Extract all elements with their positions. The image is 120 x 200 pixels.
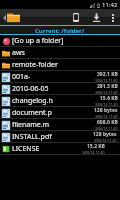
staticText: 11:42 (102, 1, 118, 9)
staticText: 3/06/14 11:40 (82, 150, 105, 155)
button[interactable]: INSTALL.pdf (0, 131, 120, 143)
staticText: document.pdf (12, 108, 53, 118)
staticText: aws (12, 48, 25, 58)
button[interactable]: Current: /folder/ (0, 26, 120, 35)
staticText: 392.1 KB (97, 71, 118, 78)
button[interactable]: More options (106, 9, 120, 26)
staticText: 3/06/14 11:40 (95, 114, 118, 119)
button[interactable]: Download (86, 9, 106, 26)
staticText: INSTALL.pdf (12, 132, 52, 142)
button[interactable]: filename.mp3 (0, 119, 120, 131)
staticText: 3/06/14 11:40 (95, 90, 118, 95)
staticText: 3/06/14 11:40 (95, 102, 118, 107)
staticText: 128 bytes (93, 131, 117, 138)
button[interactable]: changelog.html (0, 95, 120, 107)
staticText: filename.mp3 (12, 120, 53, 130)
staticText: 3/06/14 11:40 (95, 126, 118, 131)
staticText: 608.0 KB (97, 119, 118, 126)
button[interactable]: App icon, up (0, 9, 22, 26)
button[interactable]: document.pdf (0, 107, 120, 119)
staticText: 001a-test.jpg (12, 72, 53, 82)
staticText: LICENSE (12, 144, 40, 154)
button[interactable]: [Go up a folder] (0, 35, 120, 47)
staticText: 128 bytes (94, 107, 118, 114)
staticText: [Go up a folder] (12, 36, 64, 46)
button[interactable]: Local device (66, 9, 86, 26)
button[interactable]: remote-folder (0, 59, 120, 71)
button[interactable]: 2010-06-05 14.03.25.jpg (0, 83, 120, 95)
staticText: 3/06/14 11:40 (94, 138, 117, 143)
button[interactable]: aws (0, 47, 120, 59)
staticText: 2010-06-05 14.03.25.jpg (12, 84, 53, 94)
button[interactable]: LICENSE (0, 143, 120, 155)
button[interactable]: 001a-test.jpg (0, 71, 120, 83)
staticText: Current: /folder/ (35, 27, 85, 35)
staticText: 281.3 KB (97, 83, 118, 90)
staticText: changelog.html (12, 96, 53, 106)
staticText: 15.6 KB (100, 95, 118, 102)
staticText: 3/06/14 11:40 (95, 78, 118, 83)
staticText: 15.2 KB (87, 143, 105, 150)
staticText: remote-folder (12, 60, 58, 70)
